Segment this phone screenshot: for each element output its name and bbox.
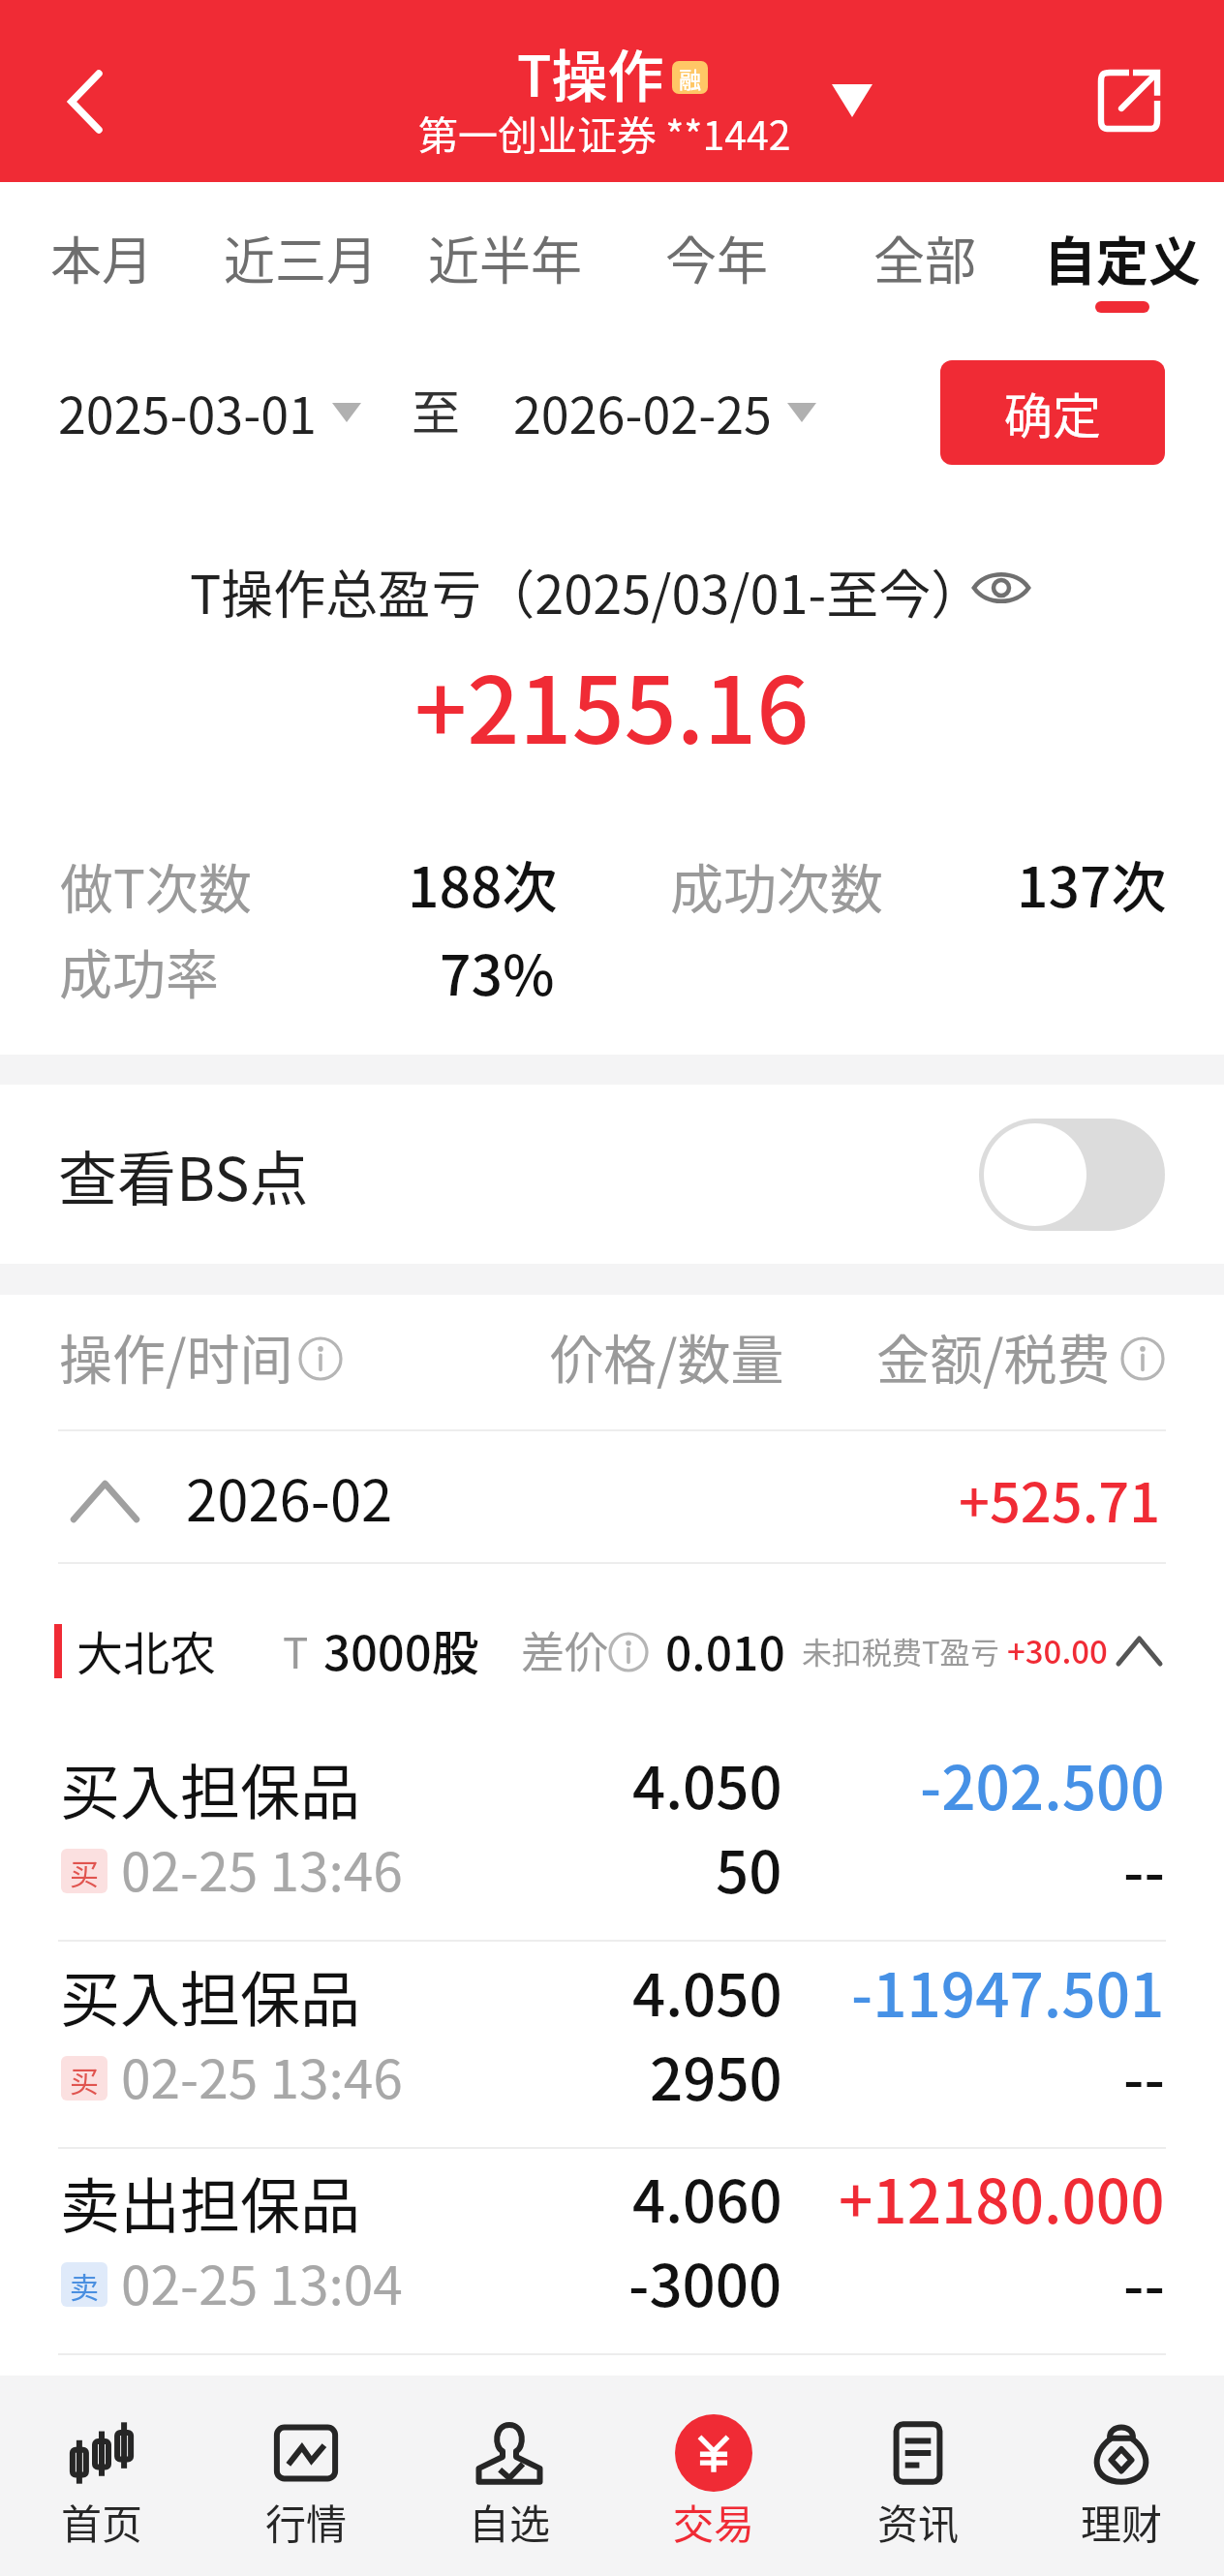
staticText: 行情	[265, 2492, 348, 2551]
staticText: 73%	[440, 932, 555, 1012]
staticText: 买入担保品	[60, 1952, 361, 2039]
staticText: 资讯	[877, 2492, 960, 2551]
button[interactable]	[1020, 2376, 1223, 2576]
staticText: 卖出担保品	[60, 2159, 361, 2246]
staticText: 理财	[1081, 2492, 1163, 2551]
button[interactable]: 本月	[29, 193, 174, 338]
staticText: 查看BS点	[58, 1132, 309, 1217]
staticText: 0.010	[665, 1616, 785, 1684]
button[interactable]: 2025-03-01	[39, 353, 381, 470]
staticText: +30.00	[1007, 1627, 1108, 1673]
staticText: 操作/时间	[59, 1317, 293, 1395]
button[interactable]	[204, 2376, 408, 2576]
button[interactable]: Share	[1079, 50, 1179, 151]
button[interactable]	[612, 2376, 815, 2576]
staticText: 2950	[650, 2033, 782, 2117]
staticText: 金额/税费	[876, 1317, 1111, 1395]
staticText: 50	[716, 1825, 782, 1910]
staticText: 2025-03-01	[58, 376, 317, 448]
staticText: 3000股	[323, 1615, 479, 1684]
button[interactable]: 查看BS点	[0, 1085, 1224, 1264]
button[interactable]: 2026-02-25	[494, 353, 836, 470]
staticText: T操作	[517, 32, 664, 113]
staticText: 近三月	[224, 221, 378, 295]
staticText: 买	[70, 2058, 99, 2100]
staticText: 全部	[873, 221, 976, 295]
staticText: 卖	[70, 2264, 99, 2306]
staticText: 第一创业证券 **1442	[418, 104, 791, 161]
staticText: 交易	[673, 2492, 755, 2551]
button[interactable]	[0, 1941, 1224, 2147]
button[interactable]: Back	[27, 44, 143, 160]
staticText: +12180.000	[839, 2154, 1165, 2241]
staticText: 近半年	[428, 221, 582, 295]
staticText: 2026-02	[186, 1457, 393, 1538]
staticText: 188次	[408, 843, 558, 924]
staticText: 4.050	[632, 1741, 782, 1825]
staticText: +2155.16	[414, 637, 810, 771]
button[interactable]: 近半年	[411, 193, 598, 338]
staticText: 确定	[1004, 378, 1101, 447]
staticText: 买入担保品	[60, 1745, 361, 1832]
staticText: --	[1123, 1825, 1165, 1910]
staticText: -202.500	[920, 1740, 1165, 1827]
staticText: 137次	[1017, 843, 1167, 924]
button[interactable]	[0, 1564, 1224, 1733]
staticText: T操作总盈亏（2025/03/01-至今）	[190, 553, 984, 629]
button[interactable]	[816, 2376, 1020, 2576]
staticText: 自选	[469, 2492, 551, 2551]
staticText: 至	[412, 374, 460, 444]
staticText: 未扣税费T盈亏	[802, 1629, 1000, 1672]
staticText: T	[283, 1619, 309, 1681]
staticText: 今年	[665, 221, 768, 295]
staticText: -3000	[628, 2239, 782, 2323]
staticText: --	[1123, 2239, 1165, 2323]
staticText: 首页	[61, 2492, 143, 2551]
button[interactable]	[408, 2376, 611, 2576]
button[interactable]: Switch account	[813, 62, 891, 139]
button[interactable]	[0, 1733, 1224, 1940]
staticText: 02-25 13:04	[121, 2243, 403, 2320]
staticText: 做T次数	[60, 846, 252, 924]
button[interactable]: 自定义	[1024, 193, 1221, 338]
button[interactable]: 近三月	[206, 193, 394, 338]
button[interactable]	[0, 1431, 1224, 1562]
staticText: 2026-02-25	[513, 376, 772, 448]
button[interactable]: 全部	[848, 193, 1001, 338]
staticText: 差价	[521, 1618, 609, 1681]
staticText: -11947.501	[851, 1947, 1165, 2035]
staticText: 4.060	[632, 2155, 782, 2239]
staticText: 自定义	[1044, 220, 1201, 295]
button[interactable]: 确定	[940, 360, 1165, 465]
staticText: 4.050	[632, 1948, 782, 2033]
staticText: 本月	[50, 221, 153, 295]
button[interactable]	[0, 2147, 1224, 2353]
button[interactable]: Toggle amount visibility	[963, 549, 1040, 627]
staticText: 02-25 13:46	[121, 1829, 403, 1907]
staticText: 02-25 13:46	[121, 2037, 403, 2114]
staticText: 成功率	[59, 932, 220, 1009]
staticText: 买	[70, 1851, 99, 1892]
staticText: +525.71	[959, 1459, 1161, 1538]
staticText: 大北农	[76, 1616, 217, 1684]
button[interactable]: 今年	[637, 193, 796, 338]
staticText: 价格/数量	[550, 1317, 784, 1395]
staticText: 融	[679, 62, 701, 94]
button[interactable]	[0, 2376, 203, 2576]
staticText: --	[1123, 2033, 1165, 2117]
staticText: 成功次数	[670, 846, 884, 924]
